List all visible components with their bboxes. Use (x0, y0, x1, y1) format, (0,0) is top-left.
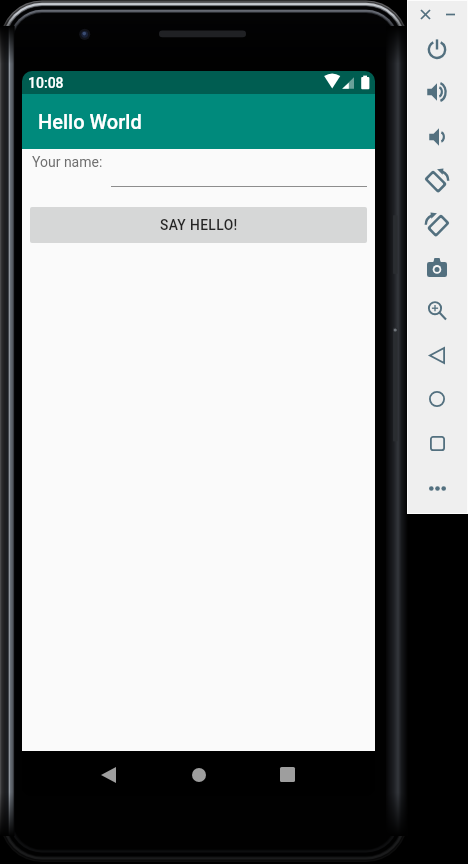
button[interactable]: Rotate right (421, 207, 453, 239)
staticText: Hello World (38, 110, 142, 133)
button[interactable]: Home (177, 752, 221, 796)
staticText: SAY HELLO! (160, 217, 238, 233)
button[interactable]: Home (422, 384, 452, 414)
button[interactable]: Take screenshot (421, 251, 453, 283)
button[interactable]: More (422, 473, 452, 503)
staticText: Your name: (32, 154, 103, 170)
button[interactable]: Volume up (421, 76, 453, 108)
button[interactable]: Name input (111, 169, 367, 187)
button[interactable]: Volume down (423, 121, 455, 153)
button[interactable]: SAY HELLO! (30, 207, 367, 243)
button[interactable]: Power (422, 33, 452, 63)
button[interactable]: Rotate left (421, 163, 453, 195)
button[interactable]: Close (415, 4, 435, 24)
button[interactable]: Back (86, 752, 130, 796)
button[interactable]: Recents (265, 752, 309, 796)
staticText: 10:08 (28, 75, 64, 91)
button[interactable]: Minimize (440, 4, 460, 24)
button[interactable]: Overview (422, 428, 452, 458)
button[interactable]: Zoom (422, 296, 452, 326)
button[interactable]: Back (422, 340, 452, 370)
